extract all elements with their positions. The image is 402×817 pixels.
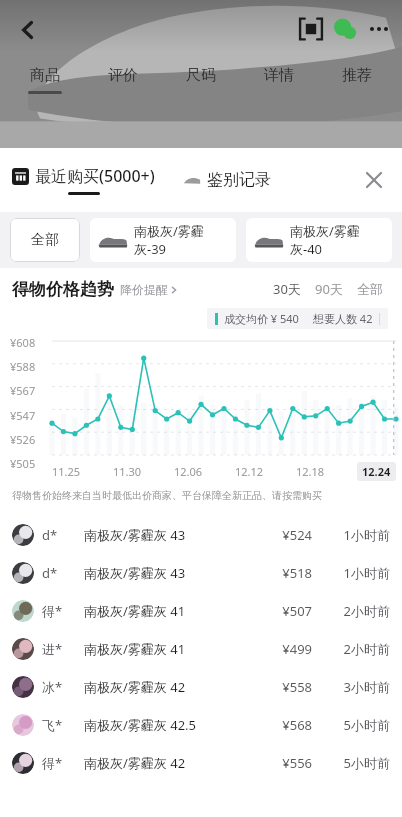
staticText: 进* xyxy=(42,640,84,658)
button[interactable]: 评价 xyxy=(84,64,162,93)
staticText: 商品 xyxy=(30,66,60,85)
button[interactable]: d* xyxy=(0,554,402,592)
staticText: ¥507 xyxy=(238,602,312,620)
staticText: 3小时前 xyxy=(328,678,390,696)
button[interactable]: Share to WeChat xyxy=(328,12,362,46)
button[interactable]: 降价提醒 xyxy=(120,282,178,297)
button[interactable]: 得* xyxy=(0,592,402,630)
staticText: 想要人数 42 xyxy=(313,311,373,326)
button[interactable]: 南极灰/雾霾灰-39 xyxy=(90,218,236,262)
staticText: 2小时前 xyxy=(328,640,390,658)
staticText: 12.06 xyxy=(174,464,203,479)
staticText: 南极灰/雾霾灰 41 xyxy=(84,640,186,658)
staticText: ¥524 xyxy=(238,526,312,544)
button[interactable]: 最近购买(5000+) xyxy=(12,165,155,195)
staticText: 得物售价始终来自当时最低出价商家、平台保障全新正品、请按需购买 xyxy=(12,489,322,502)
staticText: 1小时前 xyxy=(328,564,390,582)
staticText: ¥567 xyxy=(10,383,36,398)
button[interactable]: Close xyxy=(356,162,392,198)
staticText: 南极灰/雾霾灰-40 xyxy=(290,222,384,258)
staticText: 12.24 xyxy=(362,464,391,479)
staticText: d* xyxy=(42,564,84,582)
staticText: 南极灰/雾霾灰 43 xyxy=(84,526,186,544)
staticText: 最近购买(5000+) xyxy=(35,165,155,187)
staticText: ¥608 xyxy=(10,335,36,350)
staticText: 5小时前 xyxy=(328,754,390,772)
button[interactable]: 全部 xyxy=(350,279,390,299)
staticText: 南极灰/雾霾灰 42 xyxy=(84,678,186,696)
button[interactable]: 出售 xyxy=(294,12,328,46)
staticText: 南极灰/雾霾灰 42.5 xyxy=(84,716,197,734)
staticText: 鉴别记录 xyxy=(207,170,271,190)
button[interactable]: 南极灰/雾霾灰-40 xyxy=(246,218,392,262)
staticText: ¥547 xyxy=(10,408,36,423)
staticText: 得* xyxy=(42,754,84,772)
staticText: 飞* xyxy=(42,716,84,734)
staticText: 冰* xyxy=(42,678,84,696)
button[interactable]: 推荐 xyxy=(318,64,396,93)
staticText: 1小时前 xyxy=(328,526,390,544)
staticText: 尺码 xyxy=(186,66,216,85)
button[interactable]: d* xyxy=(0,516,402,554)
staticText: d* xyxy=(42,526,84,544)
button[interactable]: 冰* xyxy=(0,668,402,706)
button[interactable]: 30天 xyxy=(266,278,308,300)
staticText: ¥556 xyxy=(238,754,312,772)
staticText: 得物价格趋势 xyxy=(12,279,114,300)
staticText: ¥558 xyxy=(238,678,312,696)
staticText: 成交均价 ¥ 540 xyxy=(224,311,299,326)
staticText: 南极灰/雾霾灰-39 xyxy=(134,222,228,258)
staticText: 12.12 xyxy=(235,464,264,479)
staticText: 30天 xyxy=(273,280,301,298)
staticText: 全部 xyxy=(31,231,59,249)
staticText: 全部 xyxy=(357,281,383,297)
staticText: 详情 xyxy=(264,66,294,85)
button[interactable]: 商品 xyxy=(6,64,84,96)
staticText: ¥588 xyxy=(10,359,36,374)
button[interactable]: 详情 xyxy=(240,64,318,93)
staticText: ¥499 xyxy=(238,640,312,658)
staticText: 推荐 xyxy=(342,66,372,85)
staticText: 南极灰/雾霾灰 41 xyxy=(84,602,186,620)
staticText: 5小时前 xyxy=(328,716,390,734)
staticText: 90天 xyxy=(315,280,343,298)
staticText: ¥526 xyxy=(10,432,36,447)
staticText: 降价提醒 xyxy=(120,282,168,297)
staticText: ¥518 xyxy=(238,564,312,582)
staticText: 2小时前 xyxy=(328,602,390,620)
staticText: 评价 xyxy=(108,66,138,85)
button[interactable]: More options xyxy=(362,12,396,46)
button[interactable]: 鉴别记录 xyxy=(183,170,271,190)
button[interactable]: 得* xyxy=(0,744,402,782)
staticText: 得* xyxy=(42,602,84,620)
button[interactable]: 进* xyxy=(0,630,402,668)
staticText: ¥568 xyxy=(238,716,312,734)
staticText: 11.25 xyxy=(52,464,81,479)
staticText: 11.30 xyxy=(113,464,142,479)
button[interactable]: 全部 xyxy=(10,218,80,262)
button[interactable]: 飞* xyxy=(0,706,402,744)
staticText: 南极灰/雾霾灰 43 xyxy=(84,564,186,582)
button[interactable]: Back xyxy=(8,10,48,50)
button[interactable]: 90天 xyxy=(308,278,350,300)
button[interactable]: 尺码 xyxy=(162,64,240,93)
staticText: 12.18 xyxy=(296,464,325,479)
staticText: 南极灰/雾霾灰 42 xyxy=(84,754,186,772)
staticText: ¥505 xyxy=(10,456,36,471)
